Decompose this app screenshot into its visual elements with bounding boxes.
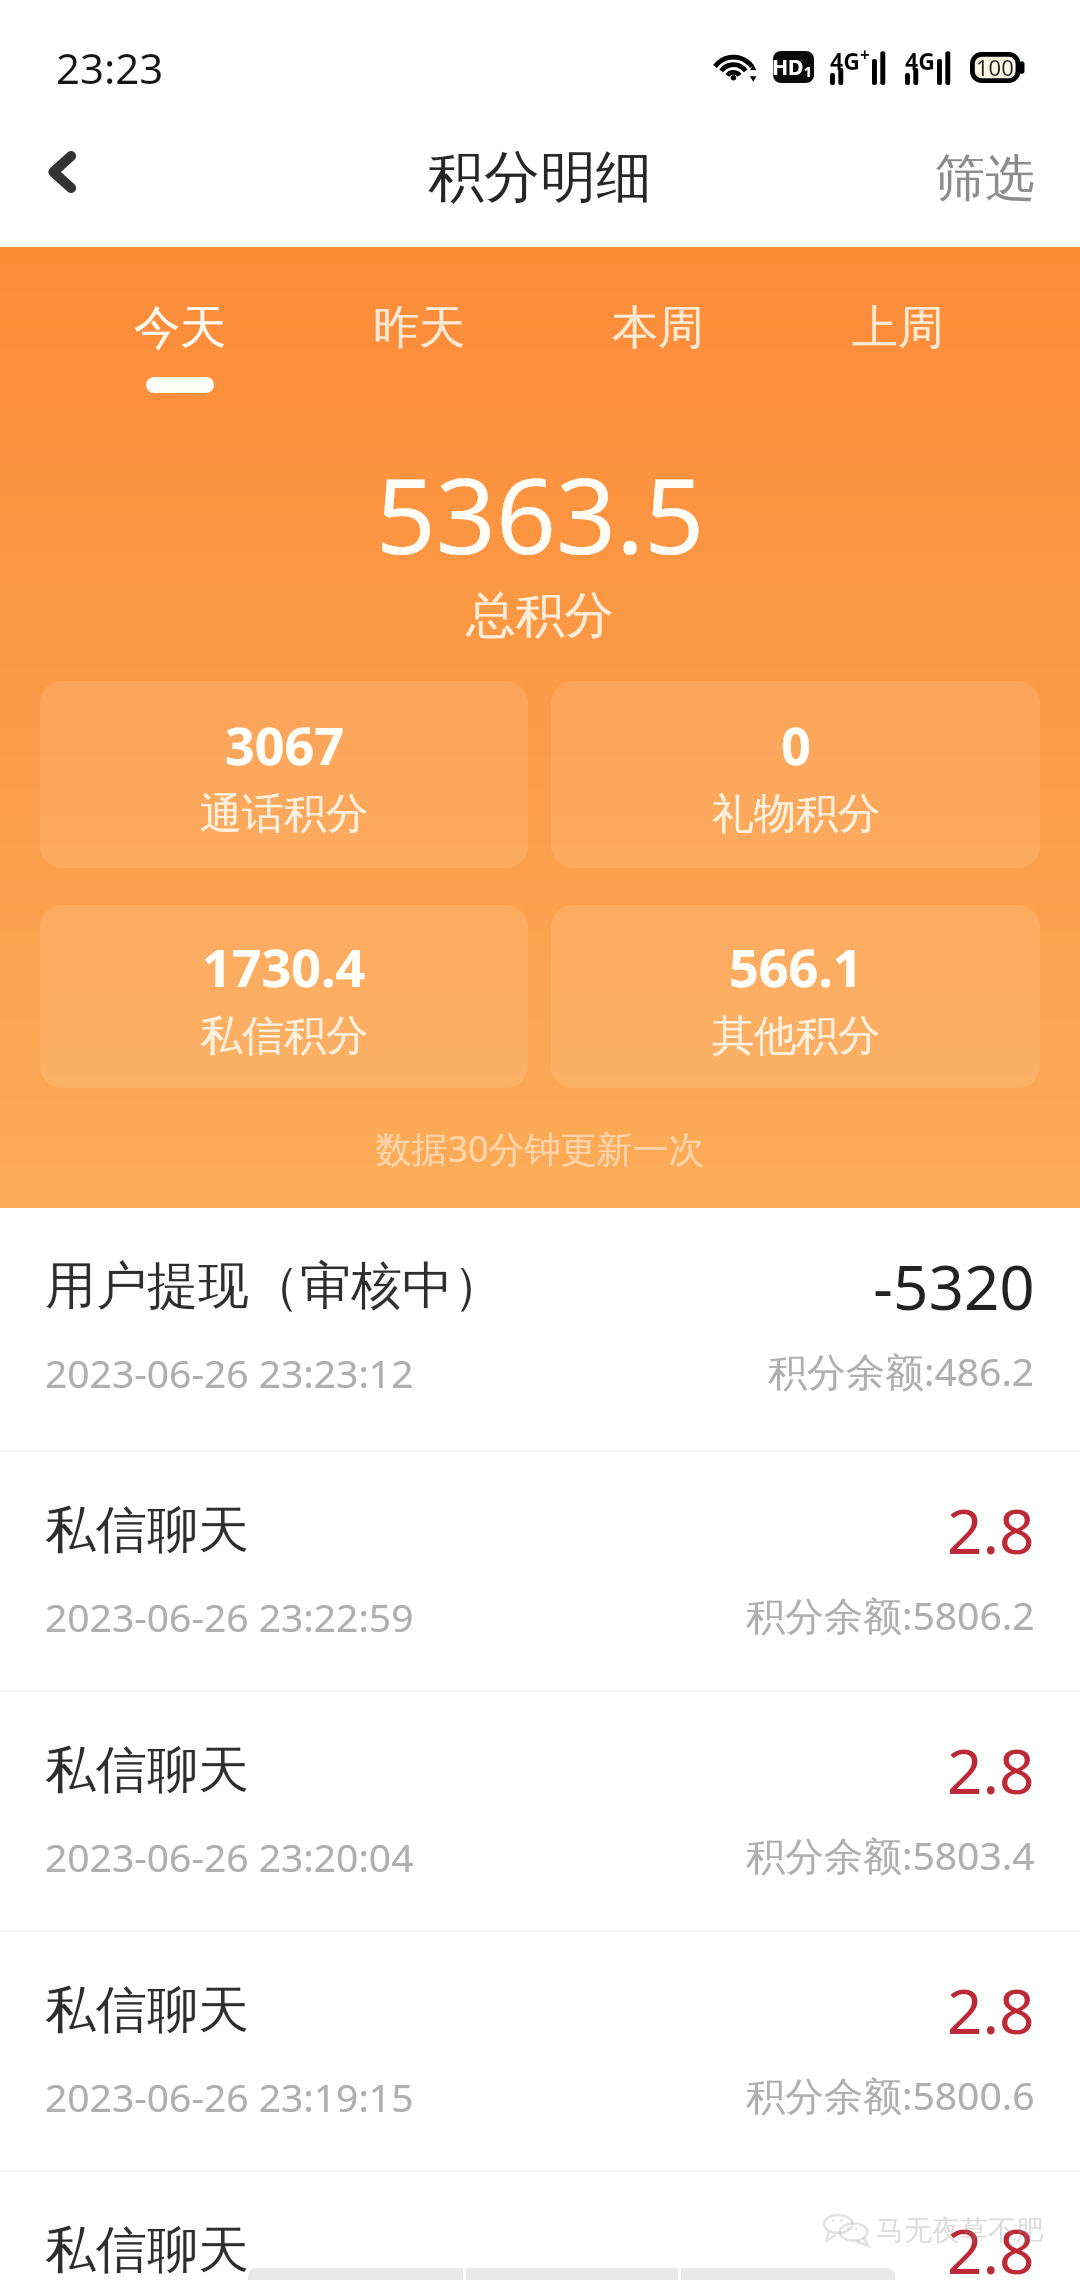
staticText: + [860, 43, 870, 66]
staticText: 昨天 [373, 299, 465, 357]
button[interactable]: 私信聊天 [0, 1932, 1080, 2170]
staticText: 礼物积分 [712, 788, 880, 841]
staticText: 积分余额:5803.4 [746, 1828, 1035, 1881]
button[interactable]: Back [4, 110, 120, 234]
button[interactable]: 1730.4 [40, 905, 528, 1088]
button[interactable]: 私信聊天 [0, 1692, 1080, 1930]
staticText: 通话积分 [200, 788, 368, 841]
staticText: 1 [804, 62, 813, 81]
staticText: 今天 [134, 299, 226, 357]
button[interactable]: 用户提现（审核中） [0, 1208, 1080, 1450]
staticText: 积分明细 [428, 142, 652, 213]
button[interactable]: 本周 [538, 293, 778, 403]
staticText: HD [773, 53, 804, 82]
button[interactable]: 昨天 [299, 293, 538, 403]
staticText: 1730.4 [202, 931, 366, 1002]
staticText: 积分余额:486.2 [768, 1344, 1035, 1397]
staticText: 566.1 [729, 931, 863, 1002]
staticText: 私信聊天 [45, 2218, 249, 2280]
staticText: 2.8 [947, 1728, 1035, 1812]
staticText: 3067 [225, 709, 344, 780]
staticText: 私信聊天 [45, 1498, 249, 1562]
staticText: 马无夜草不肥 [876, 2213, 1044, 2248]
button[interactable]: 今天 [60, 293, 299, 403]
button[interactable]: 566.1 [551, 905, 1040, 1088]
staticText: 其他积分 [712, 1010, 880, 1063]
staticText: 2023-06-26 23:20:04 [45, 1830, 414, 1883]
staticText: 100 [976, 52, 1014, 82]
staticText: 积分余额:5806.2 [746, 1588, 1035, 1641]
staticText: 2023-06-26 23:19:15 [45, 2070, 414, 2123]
button[interactable]: 私信聊天 [0, 1452, 1080, 1690]
staticText: 私信聊天 [45, 1738, 249, 1802]
staticText: 私信聊天 [45, 1978, 249, 2042]
staticText: 上周 [852, 299, 944, 357]
button[interactable]: 3067 [40, 681, 528, 868]
staticText: 2.8 [947, 1488, 1035, 1572]
staticText: 2.8 [947, 1968, 1035, 2052]
staticText: 筛选 [935, 147, 1035, 210]
staticText: 23:23 [56, 39, 164, 96]
button[interactable]: 筛选 [890, 117, 1080, 240]
staticText: 用户提现（审核中） [45, 1254, 504, 1318]
button[interactable]: 私信聊天 [0, 2172, 1080, 2280]
button[interactable]: 0 [551, 681, 1040, 868]
staticText: 本周 [612, 299, 704, 357]
staticText: 私信积分 [200, 1010, 368, 1063]
staticText: 4G [905, 45, 935, 76]
button[interactable]: 上周 [778, 293, 1018, 403]
staticText: 0 [781, 709, 811, 780]
staticText: 2023-06-26 23:23:12 [45, 1346, 414, 1399]
staticText: 数据30分钟更新一次 [0, 1124, 1080, 1173]
staticText: 4G [830, 45, 860, 76]
staticText: 5363.5 [0, 442, 1080, 585]
staticText: 2023-06-26 23:22:59 [45, 1590, 414, 1643]
staticText: -5320 [873, 1244, 1035, 1328]
staticText: 2.8 [947, 2208, 1035, 2280]
staticText: 积分余额:5800.6 [746, 2068, 1035, 2121]
staticText: 总积分 [0, 585, 1080, 647]
